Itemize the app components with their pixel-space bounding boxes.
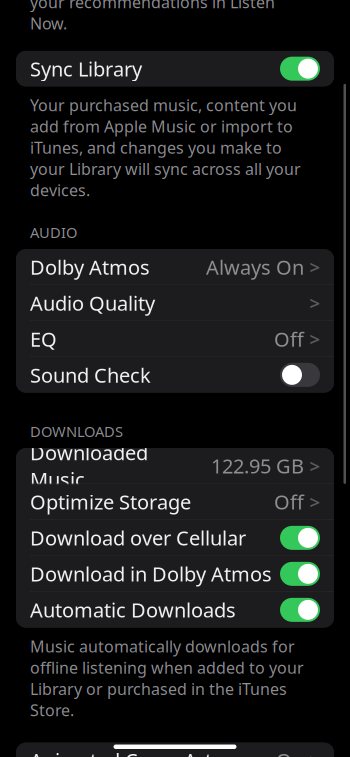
staticText: Access star ratings in the song menu. Us… [30, 0, 311, 34]
button[interactable]: Automatic Downloads [16, 592, 334, 628]
button[interactable]: Animated Cover Art [16, 743, 334, 757]
button[interactable]: Sync Library [16, 51, 334, 86]
staticText: > [309, 290, 320, 315]
button[interactable]: Optimize Storage [16, 484, 334, 520]
staticText: EQ [30, 326, 57, 352]
staticText: DOWNLOADS [30, 422, 123, 441]
button[interactable]: Download over Cellular [16, 520, 334, 556]
staticText: Download over Cellular [30, 525, 246, 551]
button[interactable]: Dolby Atmos [16, 249, 334, 285]
staticText: Your purchased music, content you add fr… [30, 94, 301, 201]
staticText: Download in Dolby Atmos [30, 561, 272, 587]
staticText: Sync Library [30, 55, 142, 82]
staticText: Dolby Atmos [30, 254, 150, 280]
button[interactable]: Download in Dolby Atmos [16, 556, 334, 592]
staticText: Off [274, 489, 304, 515]
staticText: Off [274, 326, 304, 352]
staticText: On [276, 747, 304, 757]
staticText: Sound Check [30, 362, 151, 388]
staticText: Downloaded Music [30, 439, 148, 492]
staticText: > [309, 326, 320, 351]
staticText: Always On [206, 254, 304, 280]
staticText: > [309, 453, 320, 478]
staticText: > [309, 489, 320, 514]
staticText: 122.95 GB [211, 453, 304, 479]
staticText: Automatic Downloads [30, 597, 236, 623]
staticText: Animated Cover Art [30, 747, 212, 757]
button[interactable]: EQ [16, 321, 334, 357]
staticText: > [309, 254, 320, 279]
staticText: AUDIO [30, 223, 77, 242]
staticText: Audio Quality [30, 290, 155, 316]
button[interactable]: Downloaded Music [16, 448, 334, 484]
staticText: Music automatically downloads for offlin… [30, 636, 304, 721]
staticText: Optimize Storage [30, 489, 191, 515]
button[interactable]: Sound Check [16, 357, 334, 393]
button[interactable]: Audio Quality [16, 285, 334, 321]
